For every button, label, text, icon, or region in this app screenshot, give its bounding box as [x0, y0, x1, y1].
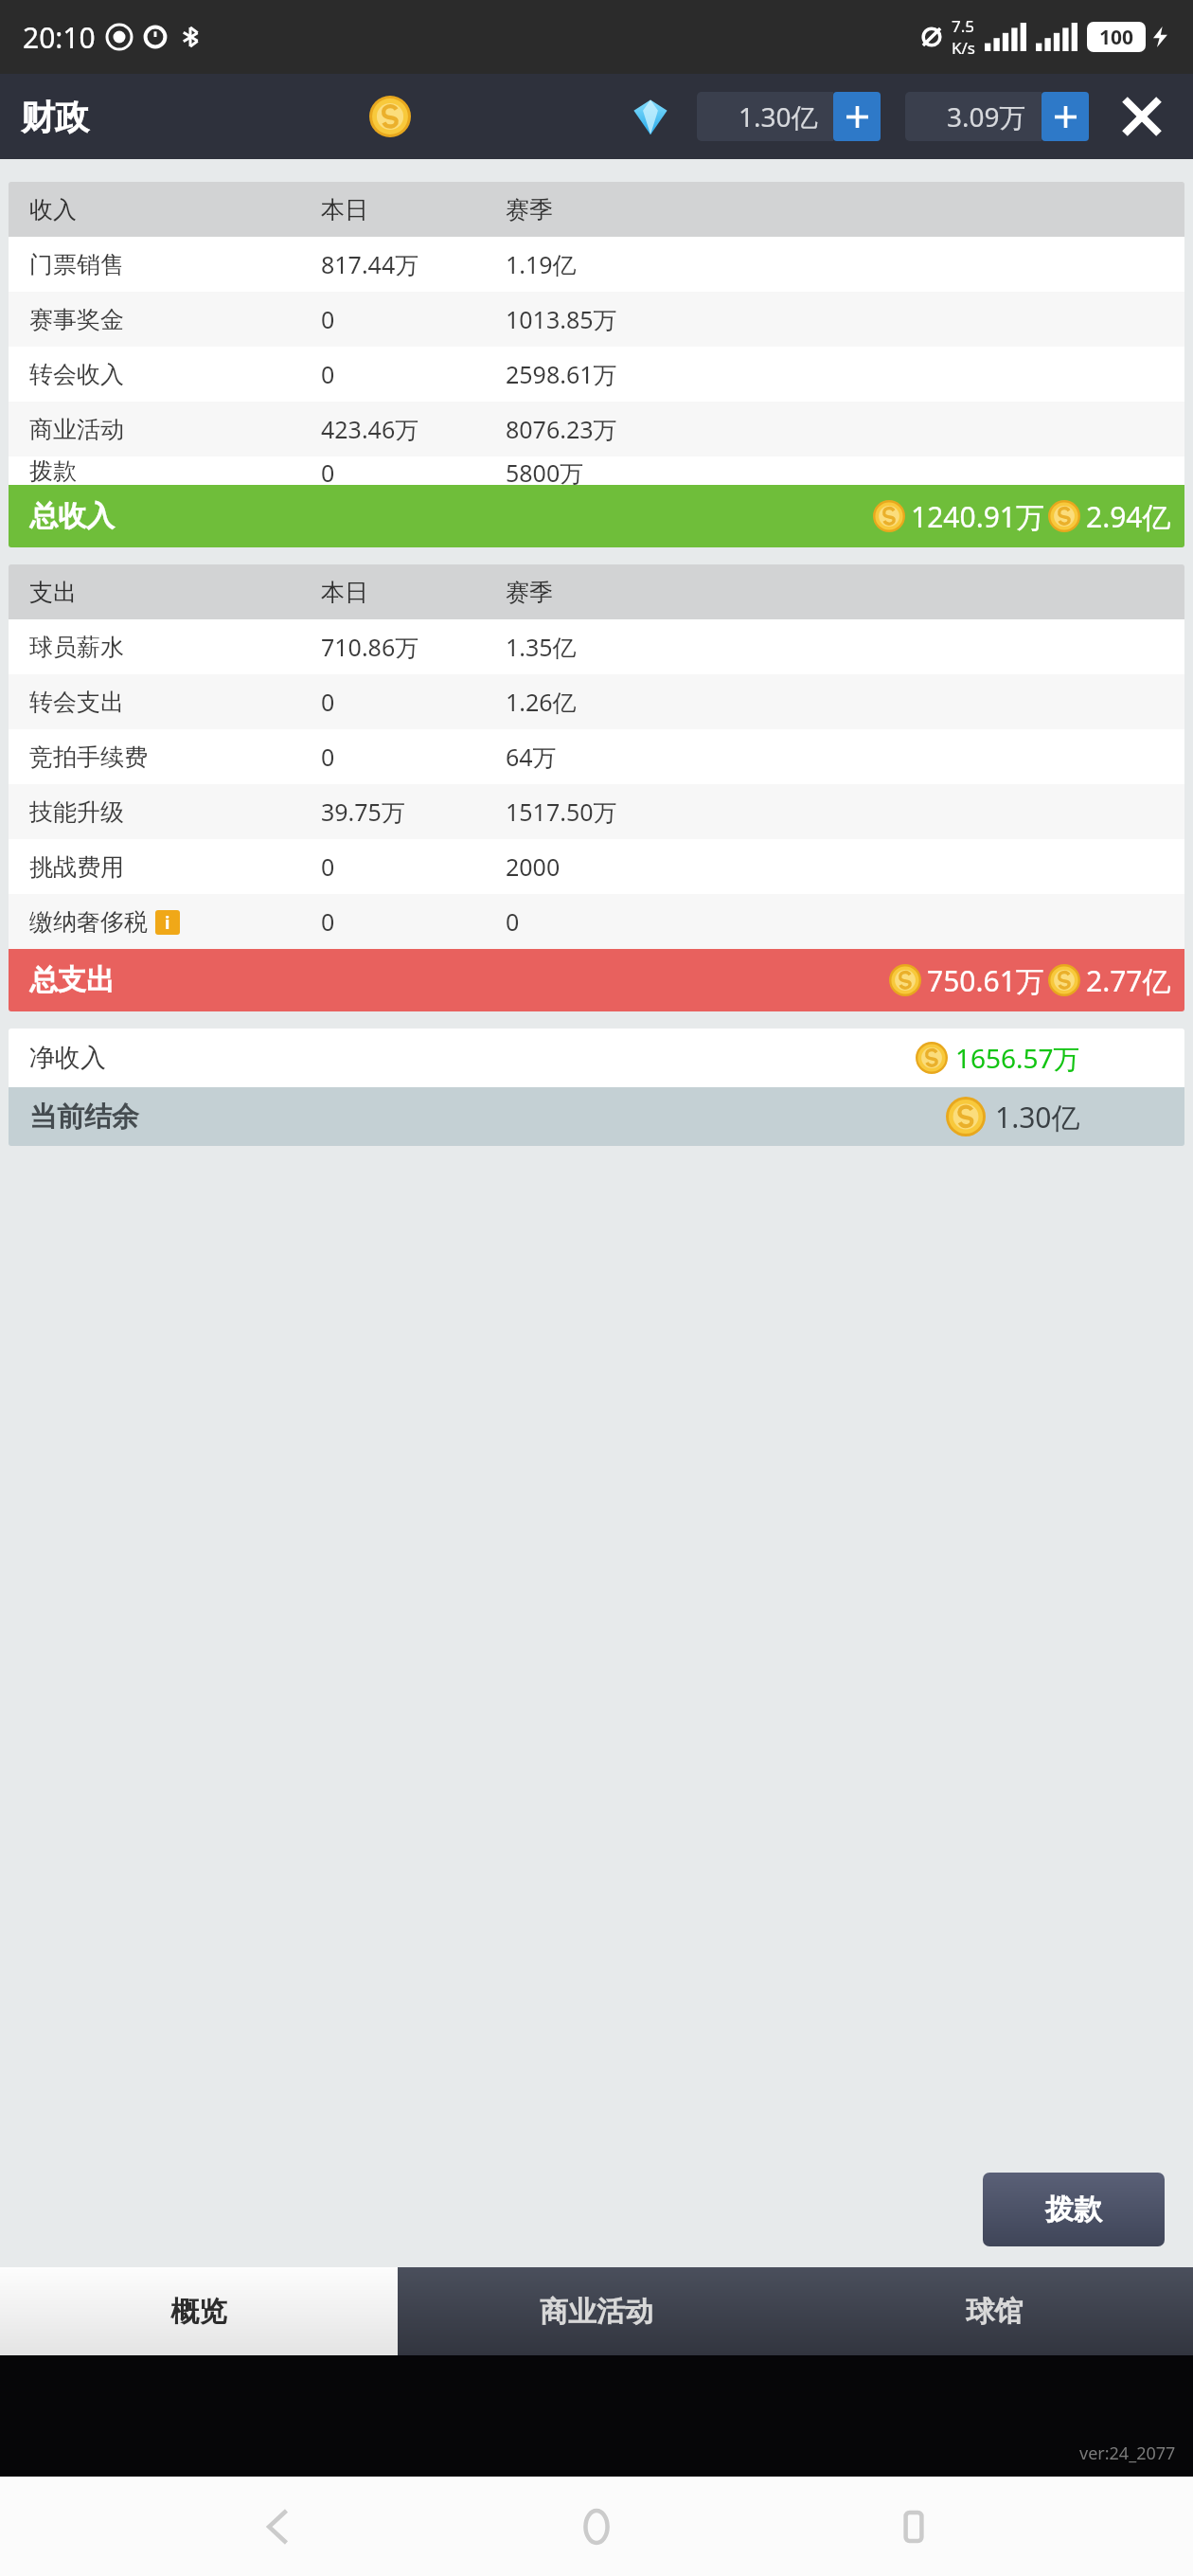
staticText: 拨款: [1045, 2191, 1102, 2227]
staticText: 0: [321, 741, 335, 773]
staticText: 100: [1099, 24, 1134, 51]
staticText: 5800万: [506, 456, 584, 485]
button[interactable]: 商业活动: [398, 2267, 795, 2355]
button[interactable]: 挑战费用: [9, 839, 1184, 894]
staticText: 2.94亿: [1086, 497, 1171, 536]
staticText: 总支出: [29, 962, 115, 998]
staticText: 2000: [506, 850, 561, 883]
staticText: 门票销售: [29, 250, 124, 279]
staticText: 1240.91万: [911, 497, 1044, 536]
staticText: 球员薪水: [29, 633, 124, 662]
staticText: 1656.57万: [955, 1040, 1080, 1076]
staticText: 39.75万: [321, 796, 405, 828]
staticText: 1.30亿: [739, 98, 818, 134]
staticText: 1517.50万: [506, 796, 617, 828]
button[interactable]: 商业活动: [9, 402, 1184, 456]
button[interactable]: 净收入: [9, 1029, 1184, 1087]
button[interactable]: 技能升级: [9, 784, 1184, 839]
staticText: 商业活动: [540, 2294, 653, 2330]
button[interactable]: 球员薪水: [9, 619, 1184, 674]
staticText: 0: [506, 905, 520, 938]
staticText: 1.35亿: [506, 631, 577, 663]
staticText: 1.30亿: [995, 1098, 1080, 1136]
staticText: 拨款: [29, 456, 77, 485]
staticText: 竞拍手续费: [29, 742, 148, 772]
button[interactable]: Add gems: [1042, 92, 1089, 141]
staticText: 2598.61万: [506, 358, 617, 390]
button[interactable]: 转会收入: [9, 347, 1184, 402]
staticText: ver:24_2077: [1079, 2442, 1176, 2465]
button[interactable]: Back: [241, 2489, 317, 2565]
staticText: 收入: [29, 195, 77, 224]
button[interactable]: 门票销售: [9, 237, 1184, 292]
staticText: 8076.23万: [506, 413, 617, 445]
staticText: 缴纳奢侈税: [29, 907, 148, 937]
staticText: K/s: [952, 37, 975, 59]
staticText: 1.26亿: [506, 686, 577, 718]
staticText: 本日: [321, 195, 368, 224]
button[interactable]: 球馆: [795, 2267, 1193, 2355]
button[interactable]: Close: [1115, 90, 1168, 143]
button[interactable]: 总收入: [9, 485, 1184, 547]
staticText: 1.19亿: [506, 248, 577, 280]
staticText: 20:10: [23, 18, 96, 57]
staticText: 2.77亿: [1086, 961, 1171, 1000]
staticText: 赛季: [506, 578, 553, 607]
staticText: 本日: [321, 578, 368, 607]
staticText: 0: [321, 850, 335, 883]
staticText: 净收入: [29, 1042, 106, 1074]
staticText: 财政: [21, 96, 89, 138]
staticText: 转会收入: [29, 360, 124, 389]
button[interactable]: 拨款: [983, 2173, 1165, 2246]
button[interactable]: Add coins: [833, 92, 881, 141]
staticText: 64万: [506, 741, 557, 773]
staticText: 支出: [29, 578, 77, 607]
button[interactable]: 概览: [0, 2267, 398, 2355]
staticText: 0: [321, 303, 335, 335]
staticText: i: [165, 911, 170, 935]
staticText: 赛季: [506, 195, 553, 224]
staticText: 1013.85万: [506, 303, 617, 335]
button[interactable]: 拨款: [9, 456, 1184, 485]
button[interactable]: Home: [559, 2489, 634, 2565]
staticText: 挑战费用: [29, 852, 124, 882]
staticText: 817.44万: [321, 248, 419, 280]
staticText: 0: [321, 686, 335, 718]
staticText: 赛事奖金: [29, 305, 124, 334]
button[interactable]: 当前结余: [9, 1087, 1184, 1146]
staticText: 技能升级: [29, 797, 124, 827]
button[interactable]: 赛事奖金: [9, 292, 1184, 347]
button[interactable]: 缴纳奢侈税: [9, 894, 1184, 949]
staticText: 概览: [170, 2294, 227, 2330]
staticText: 0: [321, 358, 335, 390]
button[interactable]: 转会支出: [9, 674, 1184, 729]
staticText: 当前结余: [29, 1100, 139, 1135]
staticText: 710.86万: [321, 631, 419, 663]
staticText: 750.61万: [927, 961, 1044, 1000]
staticText: 423.46万: [321, 413, 419, 445]
staticText: 总收入: [29, 498, 115, 534]
staticText: 球馆: [966, 2294, 1023, 2330]
button[interactable]: 竞拍手续费: [9, 729, 1184, 784]
button[interactable]: Recents: [876, 2489, 952, 2565]
staticText: 3.09万: [947, 98, 1026, 134]
staticText: 转会支出: [29, 688, 124, 717]
staticText: 商业活动: [29, 415, 124, 444]
staticText: 0: [321, 456, 335, 485]
staticText: 0: [321, 905, 335, 938]
button[interactable]: 3.09万: [905, 92, 1042, 141]
button[interactable]: 1.30亿: [697, 92, 833, 141]
staticText: 7.5: [952, 15, 975, 37]
button[interactable]: 总支出: [9, 949, 1184, 1011]
